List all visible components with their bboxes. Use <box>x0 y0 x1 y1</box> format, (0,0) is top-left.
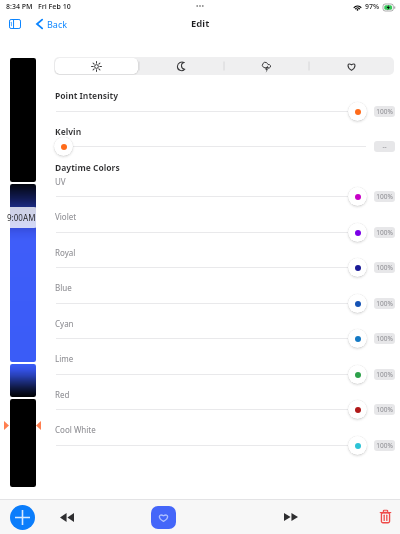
staticText: Cool White <box>55 424 96 435</box>
button[interactable]: Add <box>10 505 35 530</box>
staticText: Cyan <box>55 318 74 329</box>
button[interactable]: Night <box>140 58 223 74</box>
staticText: Edit <box>191 17 210 30</box>
staticText: Fri Feb 10 <box>38 2 71 12</box>
button[interactable] <box>10 58 36 182</box>
button[interactable] <box>10 184 36 362</box>
button[interactable]: 100% <box>374 191 395 202</box>
button[interactable]: Rewind <box>56 506 78 528</box>
button[interactable] <box>348 294 367 313</box>
button[interactable]: 100% <box>374 227 395 238</box>
button[interactable] <box>10 364 36 397</box>
staticText: 100% <box>376 299 393 308</box>
staticText: 97% <box>365 2 380 12</box>
staticText: Daytime Colors <box>55 162 120 174</box>
staticText: 100% <box>376 263 393 272</box>
button[interactable]: 100% <box>374 262 395 273</box>
staticText: 100% <box>376 228 393 237</box>
button[interactable] <box>348 329 367 348</box>
button[interactable]: Favourites <box>310 58 393 74</box>
staticText: Point Intensity <box>55 90 119 102</box>
staticText: -- <box>382 142 387 151</box>
button[interactable]: Favourite <box>151 506 176 529</box>
staticText: UV <box>55 176 66 187</box>
staticText: 100% <box>376 192 393 201</box>
staticText: 100% <box>376 405 393 414</box>
button[interactable]: Back <box>36 17 68 30</box>
button[interactable] <box>348 187 367 206</box>
button[interactable] <box>348 436 367 455</box>
staticText: 100% <box>376 370 393 379</box>
button[interactable] <box>348 365 367 384</box>
staticText: Violet <box>55 211 77 222</box>
button[interactable]: -- <box>374 141 395 152</box>
button[interactable]: Weather <box>225 58 308 74</box>
staticText: Blue <box>55 282 72 293</box>
button[interactable] <box>348 258 367 277</box>
button[interactable]: Day <box>55 58 138 74</box>
button[interactable]: 9:00AM <box>2 207 41 228</box>
button[interactable]: Forward <box>280 506 302 528</box>
button[interactable]: 100% <box>374 369 395 380</box>
staticText: 100% <box>376 107 393 116</box>
button[interactable]: Sidebar <box>9 17 29 30</box>
button[interactable]: 100% <box>374 298 395 309</box>
staticText: Back <box>47 18 68 30</box>
button[interactable]: 100% <box>374 440 395 451</box>
staticText: Lime <box>55 353 74 364</box>
staticText: 8:34 PM <box>6 2 33 12</box>
staticText: 100% <box>376 441 393 450</box>
button[interactable]: 100% <box>374 404 395 415</box>
staticText: Red <box>55 389 70 400</box>
staticText: Royal <box>55 247 76 258</box>
staticText: 9:00AM <box>7 212 36 223</box>
staticText: 100% <box>376 334 393 343</box>
button[interactable]: 100% <box>374 106 395 117</box>
button[interactable] <box>54 137 73 156</box>
button[interactable] <box>348 400 367 419</box>
button[interactable] <box>348 223 367 242</box>
button[interactable]: Delete <box>375 506 396 527</box>
button[interactable]: 100% <box>374 333 395 344</box>
button[interactable] <box>10 399 36 487</box>
staticText: Kelvin <box>55 126 82 138</box>
button[interactable] <box>348 102 367 121</box>
